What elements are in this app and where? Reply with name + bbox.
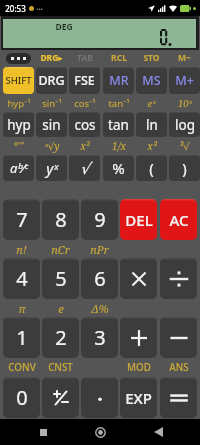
- staticText: ln: [146, 116, 158, 134]
- staticText: CONV: [8, 361, 36, 374]
- staticText: 6: [94, 265, 106, 292]
- button[interactable]: EXP: [120, 377, 157, 418]
- staticText: 4: [16, 265, 28, 292]
- button[interactable]: 5: [42, 258, 79, 299]
- button[interactable]: (: [136, 155, 167, 181]
- button[interactable]: AC: [160, 199, 197, 240]
- staticText: ···: [36, 3, 43, 14]
- button[interactable]: %: [103, 155, 134, 181]
- button[interactable]: ): [169, 155, 200, 181]
- button[interactable]: yˣ: [36, 155, 67, 181]
- button[interactable]: hyp: [3, 112, 34, 137]
- staticText: CNST: [48, 361, 73, 374]
- staticText: 10ˣ: [178, 97, 192, 110]
- staticText: nPr: [90, 242, 109, 257]
- staticText: tan⁻¹: [108, 97, 130, 110]
- button[interactable]: tan: [103, 112, 134, 137]
- staticText: ³√: [179, 139, 190, 153]
- staticText: 0: [16, 384, 28, 411]
- staticText: SHIFT: [5, 74, 32, 87]
- staticText: 3: [94, 324, 106, 351]
- staticText: %: [112, 158, 125, 178]
- staticText: 9: [94, 206, 106, 233]
- button[interactable]: 4: [3, 258, 40, 299]
- button[interactable]: 9: [81, 199, 118, 240]
- staticText: DEG: [55, 21, 73, 33]
- button[interactable]: M+: [169, 67, 200, 94]
- staticText: ANS: [169, 361, 189, 374]
- button[interactable]: Home: [85, 419, 115, 445]
- staticText: yˣ: [46, 158, 58, 178]
- staticText: ˣ√y: [44, 139, 60, 153]
- staticText: AC: [169, 210, 189, 230]
- button[interactable]: cos: [69, 112, 100, 137]
- button[interactable]: √: [69, 155, 100, 181]
- staticText: DEL: [125, 210, 153, 230]
- button[interactable]: 1: [3, 317, 40, 358]
- staticText: M−: [178, 52, 191, 64]
- staticText: π: [18, 301, 26, 316]
- staticText: sin: [42, 116, 61, 134]
- staticText: RCL: [111, 52, 127, 64]
- staticText: cos: [74, 116, 96, 134]
- staticText: DRG▸: [40, 52, 63, 64]
- staticText: hyp: [7, 116, 31, 134]
- staticText: hyp⁻¹: [7, 97, 31, 110]
- staticText: Δ%: [91, 301, 109, 316]
- staticText: log: [175, 116, 195, 134]
- staticText: nCr: [51, 242, 70, 257]
- button[interactable]: [120, 258, 157, 299]
- staticText: °′″: [13, 139, 24, 153]
- button[interactable]: sin: [36, 112, 67, 137]
- button[interactable]: [160, 317, 197, 358]
- button[interactable]: [160, 377, 197, 418]
- staticText: tan: [108, 116, 129, 134]
- staticText: 20:53: [5, 3, 26, 14]
- button[interactable]: [120, 317, 157, 358]
- button[interactable]: ln: [136, 112, 167, 137]
- button[interactable]: FSE: [69, 67, 100, 94]
- staticText: 7: [16, 206, 28, 233]
- staticText: ): [182, 158, 187, 178]
- staticText: x³: [147, 139, 157, 153]
- button[interactable]: DEL: [120, 199, 157, 240]
- staticText: 2: [55, 324, 67, 351]
- staticText: TAB: [77, 52, 93, 64]
- staticText: MS: [142, 72, 161, 89]
- button[interactable]: [160, 258, 197, 299]
- staticText: e: [58, 301, 64, 316]
- staticText: STO: [143, 52, 160, 64]
- staticText: 1/x: [112, 139, 126, 153]
- button[interactable]: 0: [3, 377, 40, 418]
- staticText: MR: [109, 72, 129, 89]
- button[interactable]: More options: [6, 53, 31, 64]
- button[interactable]: log: [169, 112, 200, 137]
- staticText: eˣ: [147, 97, 156, 110]
- staticText: FSE: [74, 72, 95, 89]
- button[interactable]: MS: [136, 67, 167, 94]
- button[interactable]: 8: [42, 199, 79, 240]
- staticText: sin⁻¹: [42, 97, 62, 110]
- staticText: x²: [80, 139, 90, 153]
- button[interactable]: 7: [3, 199, 40, 240]
- staticText: 8: [55, 206, 67, 233]
- button[interactable]: MR: [103, 67, 134, 94]
- staticText: M+: [175, 72, 194, 89]
- button[interactable]: SHIFT: [3, 67, 34, 94]
- button[interactable]: Recents: [28, 419, 58, 445]
- staticText: DRG: [38, 72, 65, 89]
- button[interactable]: 3: [81, 317, 118, 358]
- staticText: 1: [16, 324, 28, 351]
- button[interactable]: Back: [143, 419, 173, 445]
- button[interactable]: [42, 377, 79, 418]
- staticText: EXP: [125, 388, 152, 408]
- staticText: n!: [16, 242, 27, 257]
- button[interactable]: 6: [81, 258, 118, 299]
- button[interactable]: DRG: [36, 67, 67, 94]
- staticText: aᵇ⁄ᶜ: [10, 159, 28, 177]
- button[interactable]: aᵇ⁄ᶜ: [3, 155, 34, 181]
- staticText: MOD: [127, 361, 151, 374]
- button[interactable]: 2: [42, 317, 79, 358]
- button[interactable]: [81, 377, 118, 418]
- staticText: 5: [55, 265, 67, 292]
